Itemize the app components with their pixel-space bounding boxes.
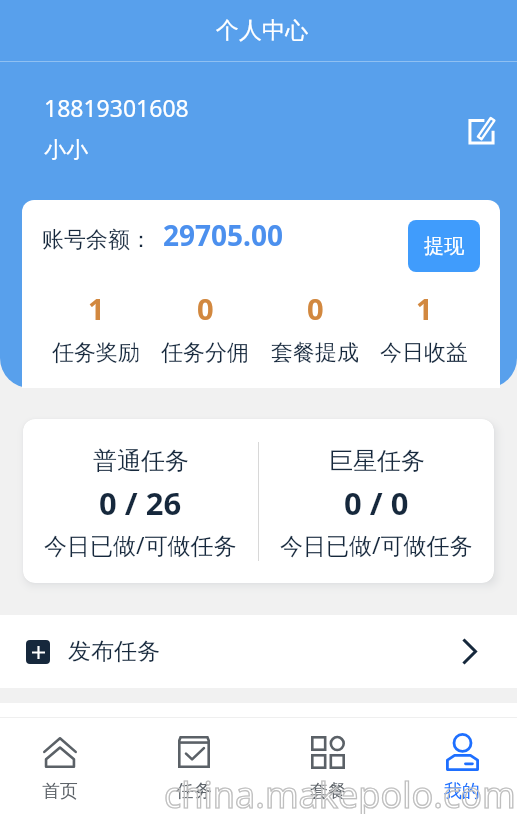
staticText: 套餐 [310, 780, 346, 803]
staticText: 首页 [42, 780, 78, 803]
staticText: 今日已做/可做任务 [280, 529, 473, 560]
staticText: china.makepolo.com [164, 770, 516, 814]
staticText: 巨星任务 [329, 446, 425, 476]
staticText: 套餐提成 [271, 339, 359, 367]
staticText: 0 / 26 [99, 482, 182, 524]
staticText: 提现 [424, 234, 464, 259]
button[interactable]: 首页 [0, 729, 127, 803]
staticText: 0 / 0 [344, 482, 409, 524]
staticText: 0 [197, 289, 214, 328]
staticText: 18819301608 [44, 92, 189, 123]
staticText: 1 [416, 289, 433, 328]
button[interactable]: Edit profile [467, 117, 496, 146]
staticText: 今日已做/可做任务 [44, 529, 237, 560]
staticText: 个人中心 [216, 16, 308, 45]
staticText: 0 [307, 289, 324, 328]
staticText: 发布任务 [68, 637, 160, 666]
button[interactable]: 我的 [395, 729, 517, 803]
staticText: 任务奖励 [52, 339, 140, 367]
staticText: 小小 [44, 136, 88, 164]
staticText: 今日收益 [380, 339, 468, 367]
staticText: 任务 [176, 780, 212, 803]
button[interactable]: 套餐 [261, 729, 395, 803]
button[interactable]: 任务 [127, 729, 261, 803]
staticText: 普通任务 [93, 446, 189, 476]
staticText: 1 [88, 289, 105, 328]
staticText: 账号余额： [42, 226, 152, 254]
staticText: 29705.00 [163, 216, 283, 254]
button[interactable]: 发布任务 [0, 615, 517, 688]
button[interactable]: 提现 [408, 220, 480, 272]
staticText: 我的 [444, 780, 480, 803]
staticText: 任务分佣 [161, 339, 249, 367]
